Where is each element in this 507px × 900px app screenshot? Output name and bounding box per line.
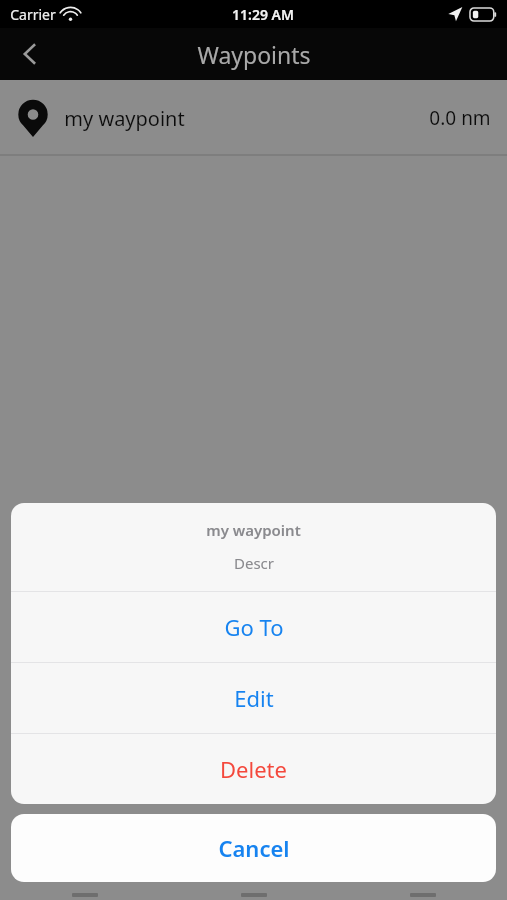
staticText: my waypoint: [64, 105, 185, 132]
button[interactable]: Edit: [11, 663, 496, 733]
button[interactable]: Go To: [11, 592, 496, 662]
staticText: 11:29 AM: [232, 5, 294, 24]
button[interactable]: Back: [6, 30, 54, 78]
staticText: Edit: [234, 683, 274, 713]
staticText: Go To: [224, 612, 284, 642]
staticText: Cancel: [218, 833, 290, 863]
staticText: Descr: [234, 553, 274, 573]
staticText: Carrier: [10, 5, 56, 24]
staticText: Waypoints: [197, 39, 311, 70]
button[interactable]: my waypoint: [0, 80, 507, 156]
button[interactable]: Cancel: [11, 814, 496, 882]
staticText: 0.0 nm: [429, 105, 491, 131]
staticText: my waypoint: [206, 520, 301, 540]
staticText: Delete: [220, 754, 287, 784]
button[interactable]: Delete: [11, 734, 496, 804]
